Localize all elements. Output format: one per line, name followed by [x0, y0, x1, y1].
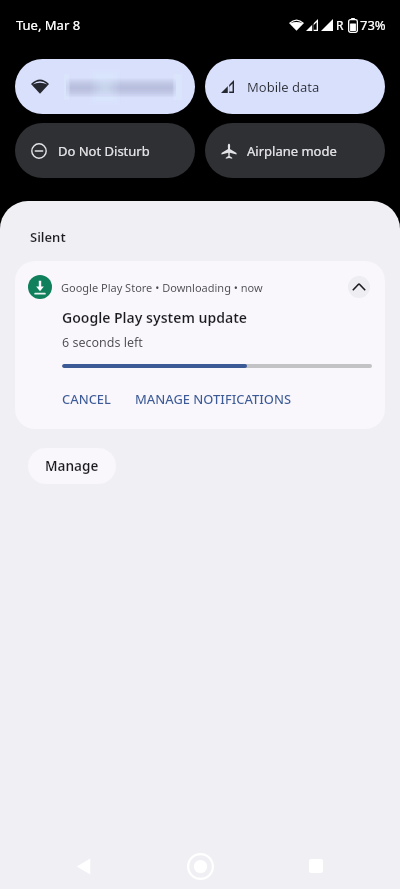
- button[interactable]: Google Play Store • Downloading • now: [15, 261, 385, 429]
- staticText: Do Not Disturb: [58, 142, 150, 160]
- button[interactable]: Recents: [292, 842, 340, 889]
- button[interactable]: MANAGE NOTIFICATIONS: [135, 386, 292, 412]
- staticText: R: [336, 17, 344, 33]
- button[interactable]: CANCEL: [62, 386, 111, 412]
- button[interactable]: Mobile data: [205, 59, 385, 114]
- staticText: CANCEL: [62, 390, 111, 408]
- button[interactable]: [15, 59, 195, 114]
- button[interactable]: Home: [176, 842, 224, 889]
- button[interactable]: Airplane mode: [205, 123, 385, 178]
- staticText: 6 seconds left: [62, 334, 143, 351]
- staticText: Airplane mode: [247, 142, 337, 160]
- staticText: Tue, Mar 8: [16, 16, 81, 34]
- button[interactable]: Collapse: [348, 276, 370, 298]
- button[interactable]: Manage: [28, 448, 116, 484]
- staticText: Silent: [30, 228, 66, 246]
- staticText: MANAGE NOTIFICATIONS: [135, 390, 292, 408]
- staticText: 73%: [360, 16, 386, 34]
- staticText: Google Play Store • Downloading • now: [61, 280, 263, 295]
- staticText: Mobile data: [247, 78, 320, 96]
- button[interactable]: Back: [59, 842, 107, 889]
- staticText: Google Play system update: [62, 308, 248, 327]
- staticText: Manage: [45, 457, 99, 475]
- button[interactable]: Do Not Disturb: [15, 123, 195, 178]
